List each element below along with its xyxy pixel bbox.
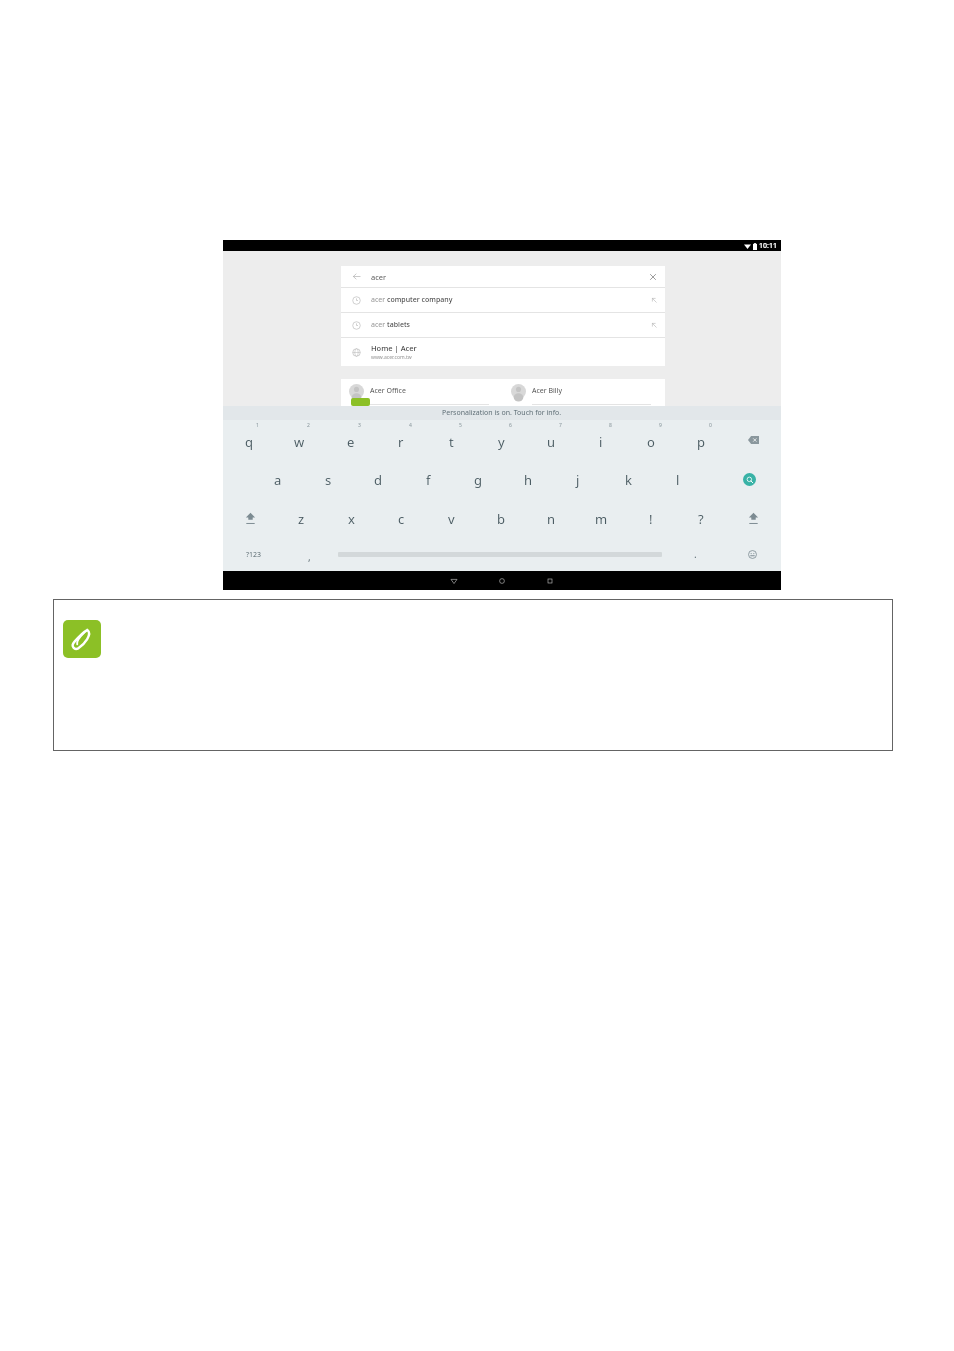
staticText: k [625,471,632,489]
button[interactable]: a [252,460,303,499]
staticText: 3 [358,422,361,429]
button[interactable]: v [426,499,476,538]
staticText: t [449,433,454,451]
staticText: 4 [409,422,412,429]
button[interactable]: ?123 [223,538,285,571]
button[interactable]: , [285,538,333,571]
staticText: n [547,510,556,528]
staticText: 8 [609,422,612,429]
button[interactable]: 1 [223,420,274,460]
staticText: ?123 [246,550,262,560]
staticText: y [498,433,505,451]
other: Home [498,577,506,585]
button[interactable]: z [277,499,326,538]
staticText: Acer Billy [532,386,563,396]
button[interactable]: s [303,460,353,499]
other: Back [450,577,458,585]
button[interactable]: c [376,499,426,538]
other: Insert suggestion [643,313,665,337]
staticText: o [647,433,655,451]
staticText: acer [371,295,387,305]
staticText: ? [698,510,704,528]
button[interactable]: Emoji [724,538,781,571]
button[interactable]: acer [341,288,665,312]
button[interactable]: 4 [376,420,426,460]
button[interactable]: Acer Office [341,379,503,406]
button[interactable]: 2 [274,420,325,460]
staticText: 1 [256,422,259,429]
staticText: ! [649,510,653,528]
staticText: d [374,471,382,489]
button[interactable]: b [476,499,526,538]
other: Insert suggestion [643,288,665,312]
staticText: Personalization is on. Touch for info. [442,408,562,418]
button[interactable]: Shift [223,499,277,538]
button[interactable]: h [503,460,553,499]
button[interactable]: Shift [726,499,781,538]
staticText: j [576,471,580,489]
staticText: b [497,510,505,528]
button[interactable]: Home | Acer [341,338,665,366]
other: Back [341,266,371,287]
staticText: p [697,433,705,451]
button[interactable]: f [403,460,453,499]
staticText: 0 [709,422,712,429]
other: Recents [546,577,554,585]
button[interactable]: l [653,460,703,499]
button[interactable]: acer [341,313,665,337]
staticText: m [595,510,608,528]
button[interactable]: 3 [325,420,376,460]
staticText: 9 [659,422,662,429]
button[interactable]: 9 [626,420,676,460]
staticText: x [348,510,355,528]
staticText: l [676,471,680,489]
staticText: Home | Acer [371,343,417,353]
button[interactable]: Space [333,538,667,571]
button[interactable]: Back [341,266,665,287]
staticText: i [599,433,603,451]
staticText: f [426,471,431,489]
button[interactable]: Search [718,460,781,499]
staticText: z [298,510,305,528]
button[interactable]: 8 [576,420,626,460]
button[interactable]: 5 [426,420,476,460]
button[interactable]: g [453,460,503,499]
staticText: Acer Office [370,386,406,396]
staticText: acer [371,320,387,330]
staticText: 5 [459,422,462,429]
staticText: acer [371,272,387,282]
button[interactable]: 6 [476,420,526,460]
staticText: 6 [509,422,512,429]
button[interactable]: d [353,460,403,499]
staticText: w [294,433,305,451]
button[interactable]: x [326,499,376,538]
staticText: 10:11 [759,241,777,251]
button[interactable]: m [576,499,626,538]
button[interactable]: Acer Billy [503,379,665,406]
staticText: 7 [559,422,562,429]
button[interactable]: ? [676,499,726,538]
staticText: 2 [307,422,310,429]
staticText: computer company [387,295,453,305]
staticText: , [308,550,311,564]
staticText: g [474,471,482,489]
staticText: c [398,510,405,528]
staticText: r [398,433,404,451]
button[interactable]: k [603,460,653,499]
button[interactable]: Personalization is on. Touch for info. [223,406,781,420]
staticText: . [694,547,697,561]
button[interactable]: n [526,499,576,538]
staticText: q [245,433,253,451]
staticText: h [524,471,533,489]
button[interactable]: ! [626,499,676,538]
staticText: u [547,433,556,451]
button[interactable]: j [553,460,603,499]
button[interactable]: 7 [526,420,576,460]
button[interactable]: 0 [676,420,726,460]
staticText: e [347,433,355,451]
staticText: www.acer.com.tw [371,354,412,361]
staticText: v [448,510,455,528]
staticText: s [325,471,332,489]
button[interactable]: Delete [726,420,781,460]
